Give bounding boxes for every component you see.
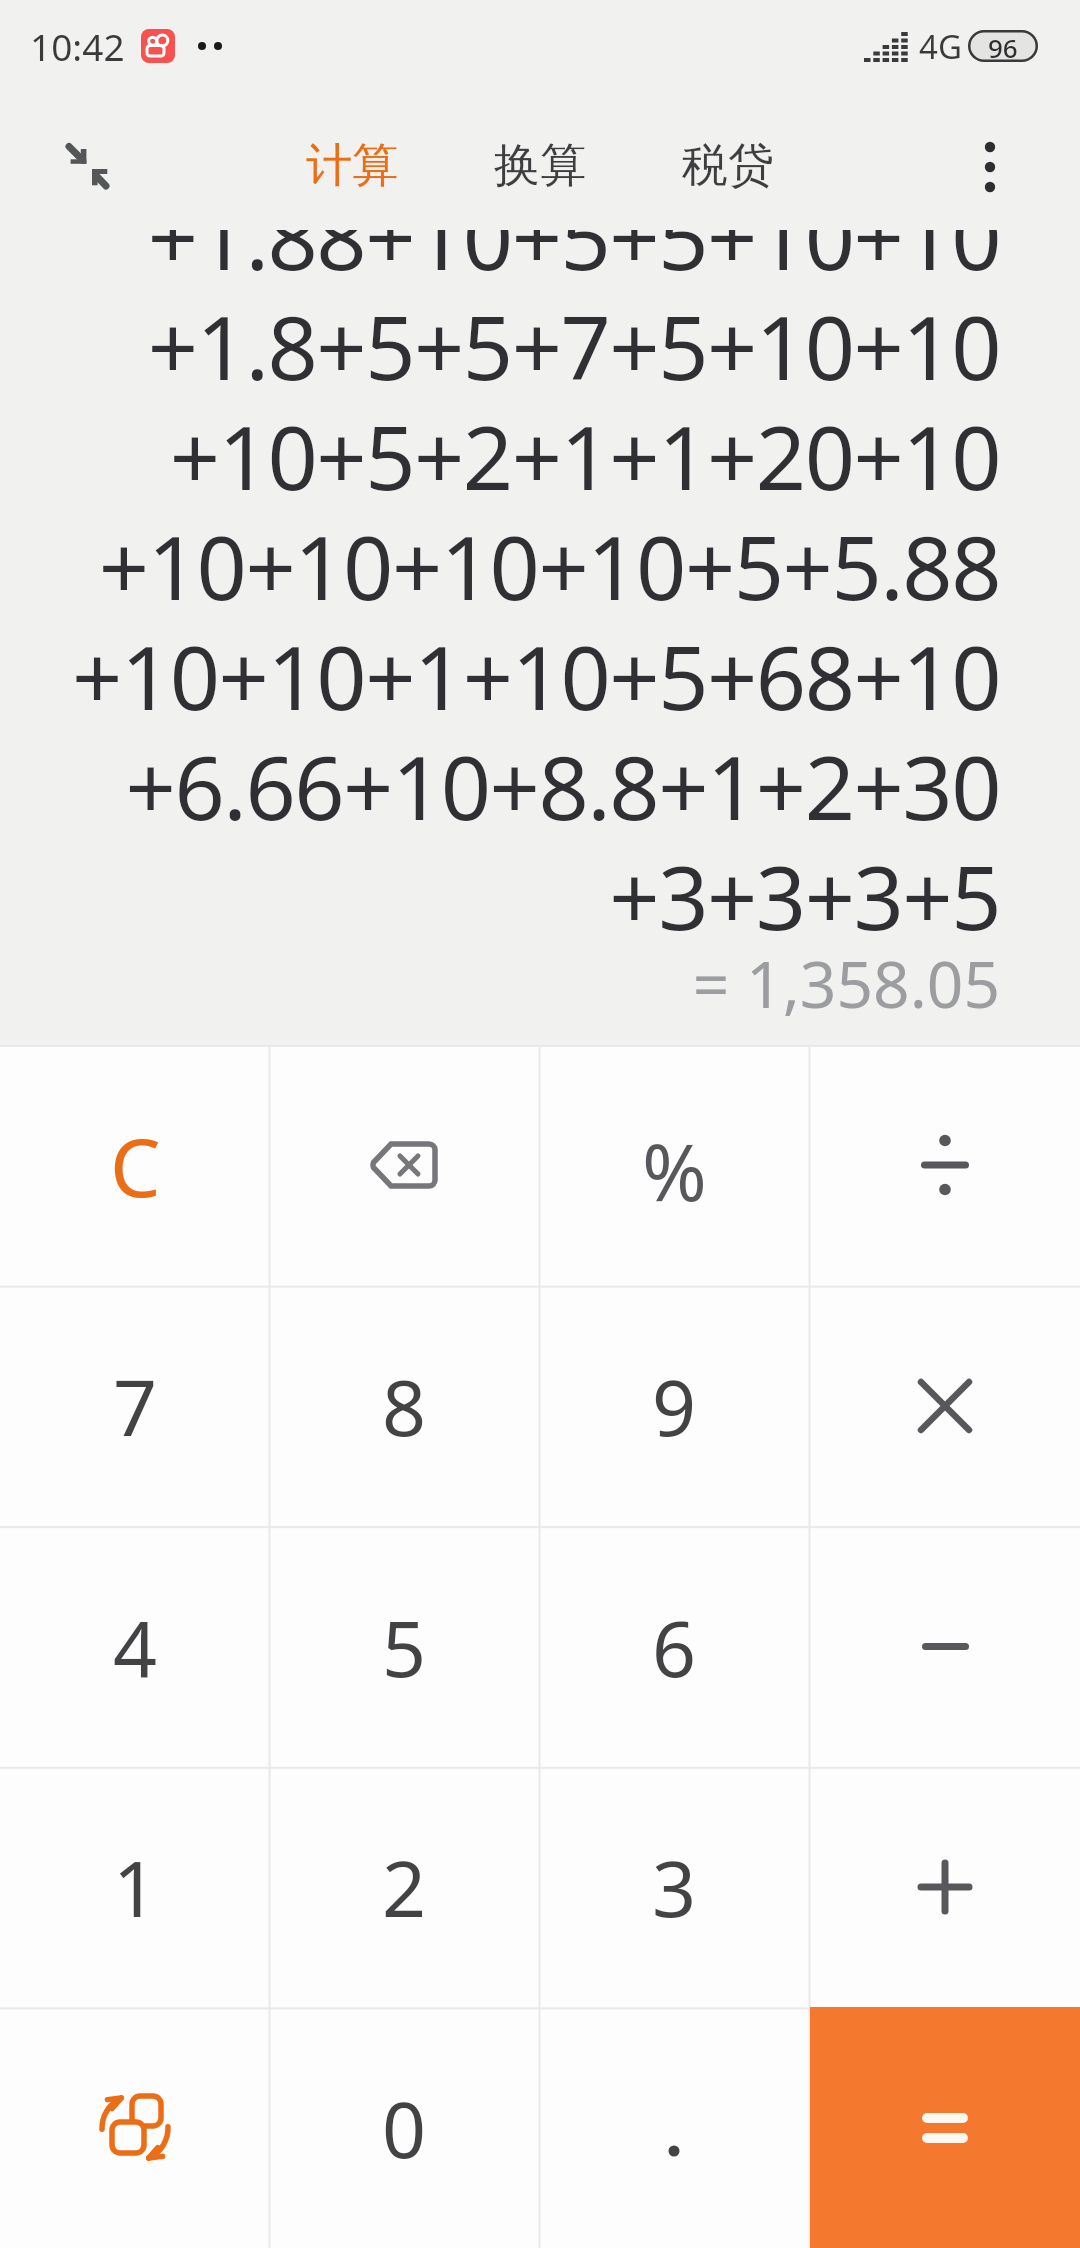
button[interactable] bbox=[810, 2007, 1080, 2248]
staticText: 4 bbox=[113, 1595, 158, 1700]
staticText: 4G bbox=[919, 24, 962, 69]
button[interactable]: 9 bbox=[540, 1286, 808, 1526]
button[interactable]: C bbox=[1, 1045, 269, 1285]
button[interactable]: 计算 bbox=[306, 137, 398, 195]
button[interactable] bbox=[1, 2008, 269, 2248]
staticText: 3 bbox=[652, 1835, 697, 1940]
button[interactable]: 税贷 bbox=[682, 137, 774, 195]
staticText: +3+3+3+5 bbox=[609, 836, 1000, 946]
button[interactable]: 0 bbox=[270, 2008, 538, 2248]
staticText: 96 bbox=[988, 30, 1018, 62]
staticText: 10:42 bbox=[30, 21, 125, 71]
staticText: 0 bbox=[382, 2076, 427, 2181]
staticText: +1.88+10+5+5+10+10 bbox=[147, 176, 1000, 286]
button[interactable] bbox=[811, 1527, 1079, 1767]
button[interactable] bbox=[811, 1045, 1079, 1285]
button[interactable] bbox=[47, 126, 127, 206]
staticText: 7 bbox=[113, 1354, 158, 1459]
staticText: 2 bbox=[382, 1835, 427, 1940]
staticText: 9 bbox=[652, 1354, 697, 1459]
button[interactable]: % bbox=[540, 1051, 808, 1291]
button[interactable]: 2 bbox=[270, 1767, 538, 2007]
staticText: 6 bbox=[652, 1595, 697, 1700]
staticText: % bbox=[642, 1118, 707, 1224]
button[interactable]: 换算 bbox=[494, 137, 586, 195]
button[interactable]: 3 bbox=[540, 1767, 808, 2007]
staticText: 1 bbox=[113, 1835, 158, 1940]
button[interactable] bbox=[540, 2008, 808, 2248]
staticText: +10+10+1+10+5+68+10 bbox=[72, 616, 1000, 726]
button[interactable] bbox=[811, 1767, 1079, 2007]
staticText: +6.66+10+8.8+1+2+30 bbox=[125, 726, 1000, 836]
staticText: 8 bbox=[382, 1354, 427, 1459]
staticText: C bbox=[110, 1111, 161, 1220]
staticText: +10+5+2+1+1+20+10 bbox=[169, 396, 1000, 506]
button[interactable]: 6 bbox=[540, 1527, 808, 1767]
button[interactable]: 8 bbox=[270, 1286, 538, 1526]
button[interactable] bbox=[811, 1286, 1079, 1526]
button[interactable]: 1 bbox=[1, 1767, 269, 2007]
button[interactable]: 4 bbox=[1, 1527, 269, 1767]
staticText: +10+10+10+10+5+5.88 bbox=[98, 506, 1000, 616]
staticText: +1.8+5+5+7+5+10+10 bbox=[147, 286, 1000, 396]
button[interactable]: 7 bbox=[1, 1286, 269, 1526]
staticText: 5 bbox=[382, 1595, 427, 1700]
button[interactable] bbox=[966, 142, 1014, 190]
button[interactable] bbox=[270, 1045, 538, 1285]
staticText: = 1,358.05 bbox=[692, 940, 1000, 1027]
button[interactable]: 5 bbox=[270, 1527, 538, 1767]
